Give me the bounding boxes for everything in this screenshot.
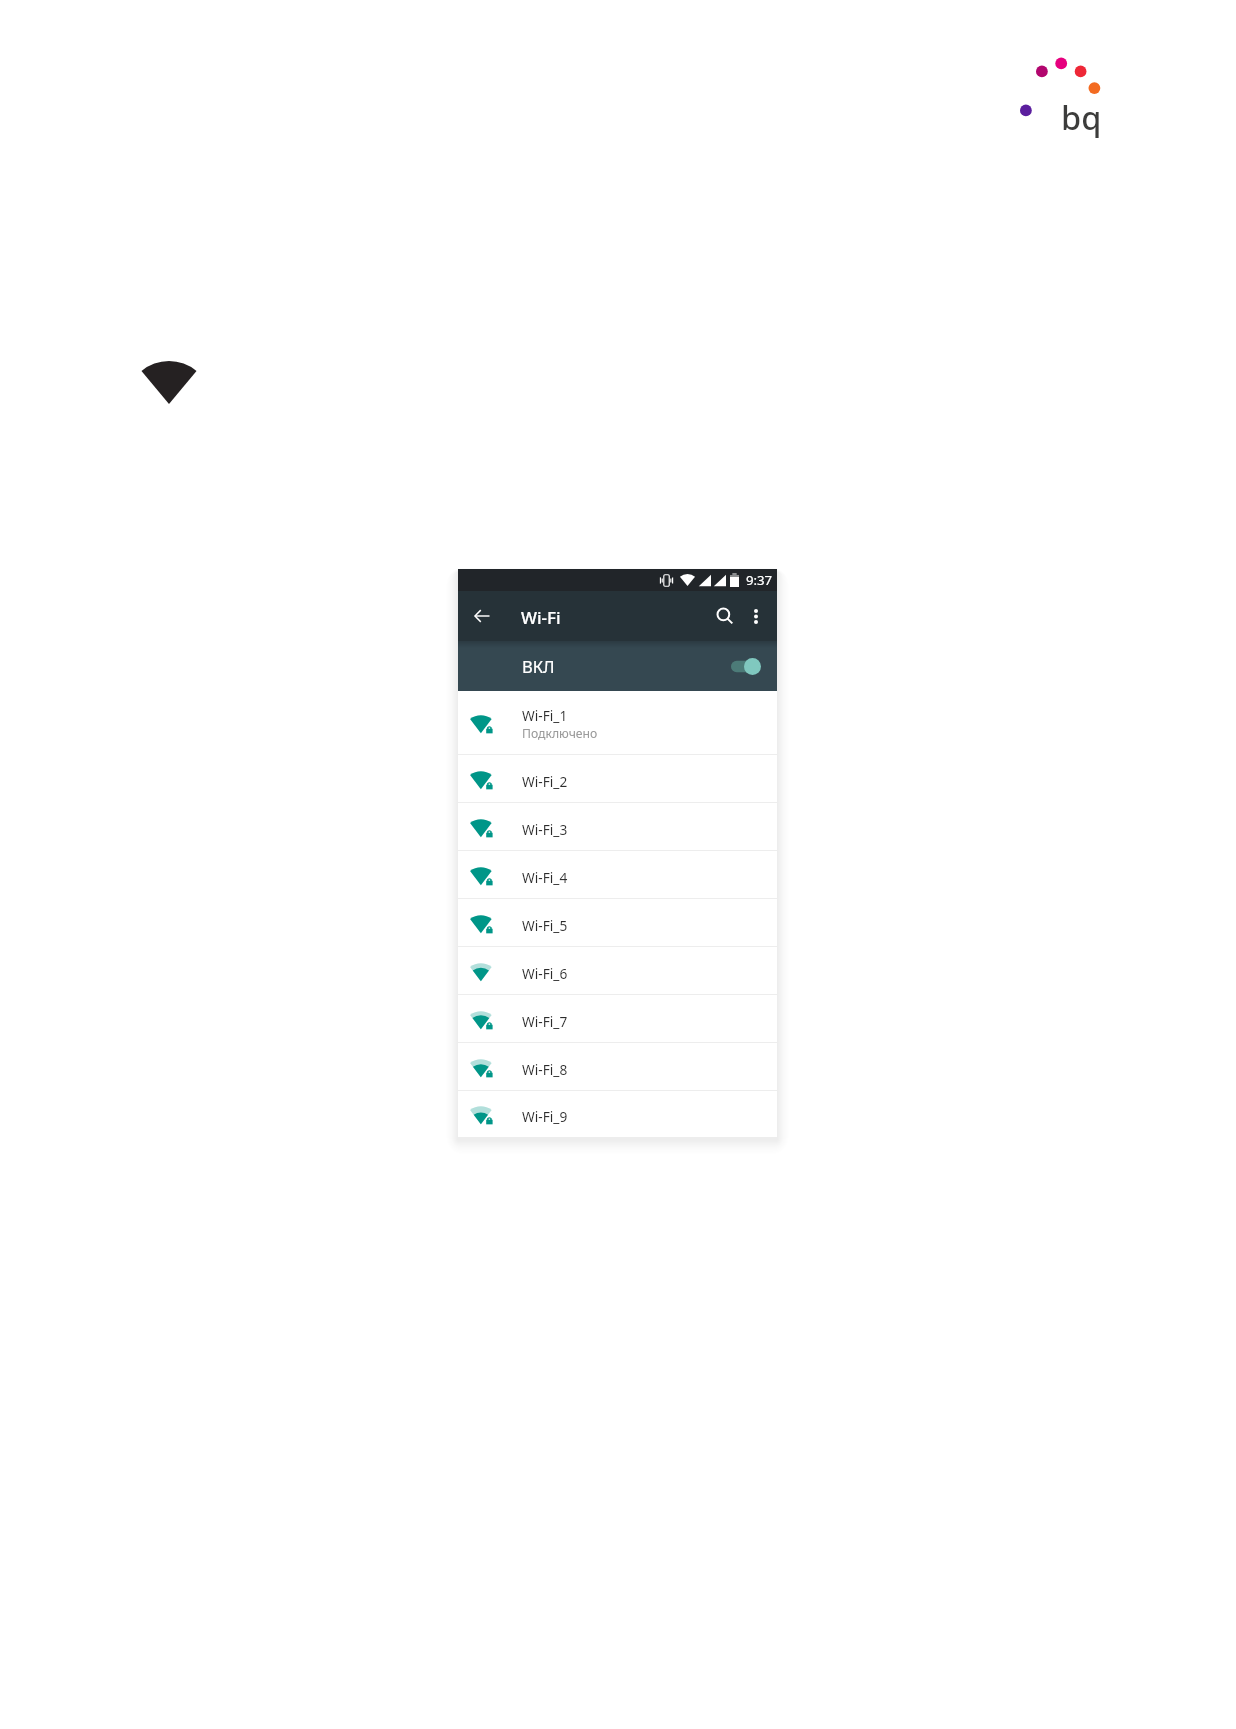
- staticText: Подключено: [522, 725, 598, 742]
- staticText: Wi-Fi_4: [522, 868, 568, 887]
- staticText: Wi-Fi_9: [522, 1107, 568, 1126]
- staticText: Wi-Fi_1: [522, 706, 568, 725]
- button[interactable]: Wi-Fi_7: [458, 995, 777, 1043]
- button[interactable]: Wi-Fi_9: [458, 1091, 777, 1137]
- staticText: Wi-Fi: [521, 606, 561, 629]
- button[interactable]: Wi-Fi_1: [458, 691, 777, 755]
- staticText: Wi-Fi_2: [522, 772, 568, 791]
- button[interactable]: Wi-Fi_3: [458, 803, 777, 851]
- button[interactable]: Wi-Fi_2: [458, 755, 777, 803]
- button[interactable]: Wi-Fi_5: [458, 899, 777, 947]
- button[interactable]: Wi-Fi_6: [458, 947, 777, 995]
- button[interactable]: Wi-Fi_8: [458, 1043, 777, 1091]
- staticText: Wi-Fi_3: [522, 820, 568, 839]
- staticText: ВКЛ: [522, 655, 555, 677]
- staticText: Wi-Fi_7: [522, 1012, 568, 1031]
- button[interactable]: Search: [701, 591, 749, 641]
- staticText: Wi-Fi_5: [522, 916, 568, 935]
- button[interactable]: ВКЛ: [458, 641, 777, 691]
- staticText: 9:37: [746, 571, 773, 589]
- staticText: Wi-Fi_8: [522, 1060, 568, 1079]
- staticText: Wi-Fi_6: [522, 964, 568, 983]
- button[interactable]: Wi-Fi_4: [458, 851, 777, 899]
- staticText: bq: [1061, 95, 1102, 139]
- button[interactable]: Back: [459, 591, 505, 641]
- button[interactable]: More options: [736, 591, 776, 641]
